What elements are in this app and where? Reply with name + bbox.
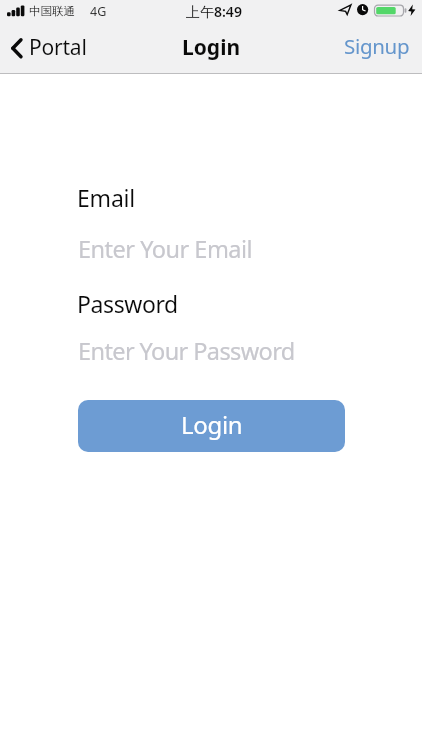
button[interactable]: Portal [8,30,98,70]
button[interactable]: Login [78,400,345,452]
staticText: Password [77,288,178,319]
staticText: 中国联通 [29,4,75,18]
staticText: Email [77,182,136,213]
staticText: Signup [344,32,410,60]
staticText: Login [182,33,241,62]
staticText: Login [181,408,243,441]
staticText: 4G [90,3,107,20]
button[interactable]: Signup [344,30,410,70]
staticText: 上午8:49 [186,2,242,21]
staticText: Enter Your Password [78,335,295,367]
staticText: Portal [29,33,87,62]
staticText: Enter Your Email [78,233,253,265]
